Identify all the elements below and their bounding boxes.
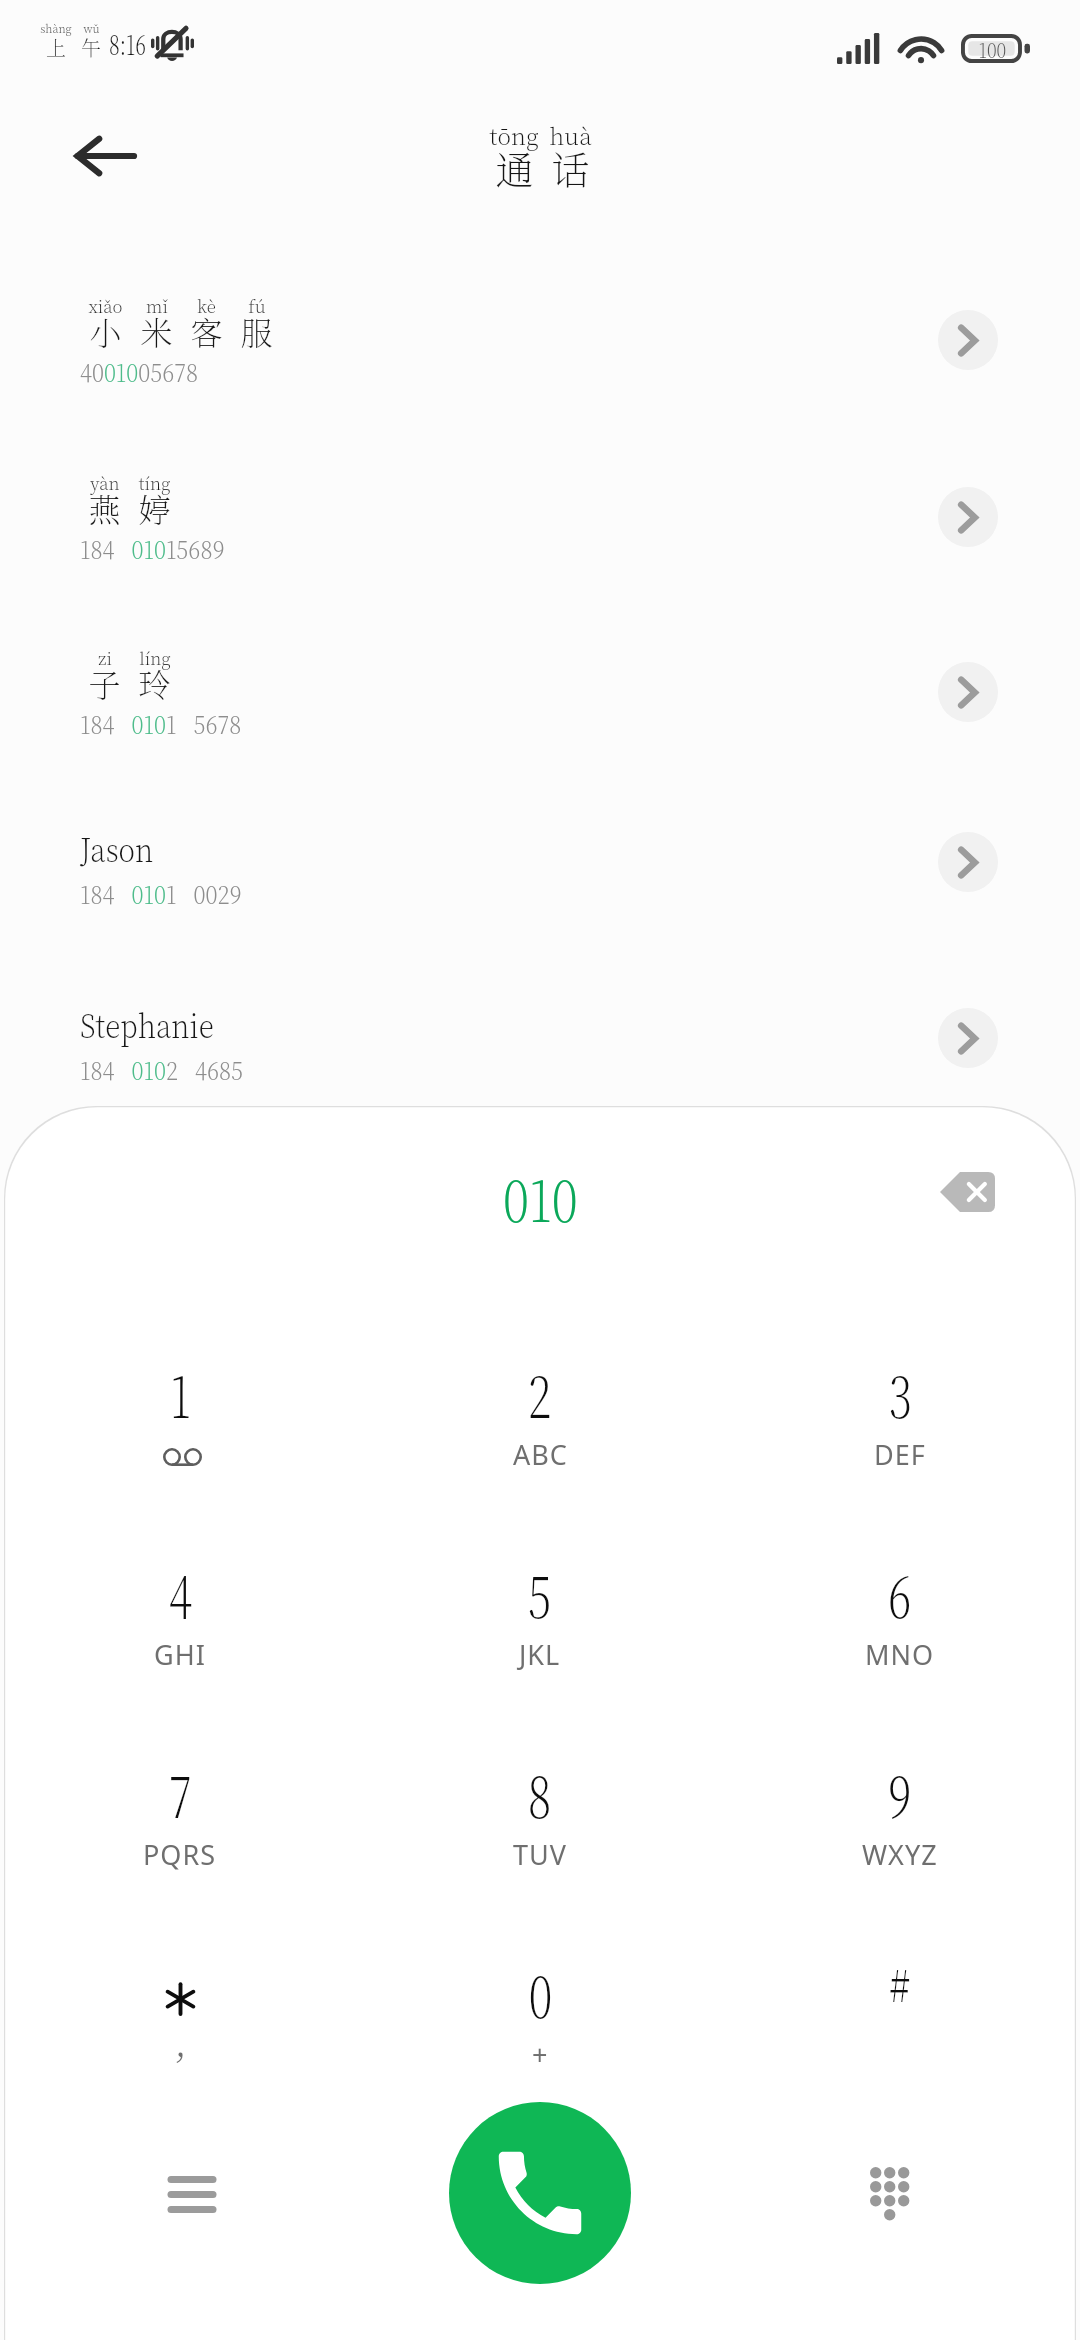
- button[interactable]: Open contact details: [938, 832, 998, 892]
- staticText: TUV: [513, 1836, 567, 1873]
- staticText: 4001005678: [80, 354, 199, 388]
- staticText: 玲: [138, 660, 171, 706]
- staticText: 184 0101 5678: [80, 706, 242, 740]
- staticText: 184 0102 4685: [80, 1052, 244, 1086]
- staticText: 上: [46, 33, 66, 62]
- staticText: mǐ: [146, 293, 168, 317]
- staticText: WXYZ: [862, 1836, 938, 1873]
- staticText: 184 01015689: [80, 531, 225, 565]
- button[interactable]: Stephanie: [0, 974, 1080, 1104]
- staticText: 0: [529, 1952, 552, 2034]
- button[interactable]: Open contact details: [938, 1008, 998, 1068]
- staticText: 燕: [88, 485, 121, 531]
- staticText: 8:16: [109, 24, 146, 63]
- staticText: 1: [170, 1352, 191, 1434]
- button[interactable]: Jason: [0, 798, 1080, 974]
- button[interactable]: Key #: [720, 1940, 1080, 2140]
- staticText: 5: [528, 1552, 552, 1634]
- button[interactable]: Key 5: [360, 1540, 720, 1740]
- button[interactable]: Key 9: [720, 1740, 1080, 1940]
- staticText: 2: [528, 1352, 552, 1434]
- button[interactable]: Key 6: [720, 1540, 1080, 1740]
- staticText: kè: [197, 293, 216, 317]
- staticText: 客: [190, 308, 223, 354]
- staticText: shàng: [40, 20, 72, 36]
- button[interactable]: Key 0: [360, 1940, 720, 2140]
- staticText: ABC: [513, 1436, 568, 1473]
- button[interactable]: Open contact details: [938, 662, 998, 722]
- staticText: 午: [81, 33, 101, 62]
- staticText: MNO: [865, 1636, 935, 1673]
- staticText: 子: [88, 660, 121, 706]
- staticText: 184 0101 0029: [80, 876, 242, 910]
- button[interactable]: Key 3: [720, 1340, 1080, 1540]
- staticText: 通: [495, 140, 534, 195]
- staticText: 服: [240, 308, 273, 354]
- button[interactable]: Open contact details: [938, 310, 998, 370]
- staticText: líng: [139, 645, 171, 669]
- staticText: fú: [248, 293, 266, 317]
- button[interactable]: Back: [58, 110, 150, 202]
- staticText: PQRS: [143, 1836, 217, 1873]
- staticText: 7: [169, 1752, 192, 1834]
- staticText: #: [890, 1949, 910, 2015]
- staticText: GHI: [154, 1636, 206, 1673]
- staticText: +: [532, 2036, 549, 2073]
- staticText: ,: [174, 2010, 187, 2067]
- button[interactable]: Key 7: [0, 1740, 360, 1940]
- staticText: 8: [528, 1752, 552, 1834]
- staticText: JKL: [519, 1636, 561, 1673]
- staticText: 010: [503, 1156, 578, 1238]
- staticText: wǔ: [83, 20, 100, 36]
- staticText: yàn: [90, 470, 120, 494]
- staticText: zi: [98, 645, 112, 669]
- button[interactable]: Key 1: [0, 1340, 360, 1540]
- staticText: 米: [140, 308, 173, 354]
- button[interactable]: Call log: [140, 2142, 244, 2246]
- staticText: Stephanie: [80, 1000, 214, 1047]
- staticText: 3: [889, 1352, 912, 1434]
- staticText: huà: [549, 119, 592, 152]
- staticText: 小: [89, 308, 122, 354]
- button[interactable]: Key 4: [0, 1540, 360, 1740]
- staticText: 婷: [138, 485, 171, 531]
- staticText: Jason: [80, 824, 154, 871]
- staticText: 100: [978, 34, 1007, 63]
- button[interactable]: Delete: [917, 1142, 1017, 1242]
- button[interactable]: Key *: [0, 1940, 360, 2140]
- staticText: 9: [888, 1752, 912, 1834]
- button[interactable]: Call: [449, 2102, 631, 2284]
- staticText: DEF: [874, 1436, 926, 1473]
- button[interactable]: Open contact details: [938, 487, 998, 547]
- button[interactable]: Dialpad: [838, 2142, 942, 2246]
- staticText: tíng: [138, 470, 171, 494]
- staticText: xiǎo: [88, 293, 123, 317]
- button[interactable]: xiǎo: [0, 276, 1080, 452]
- staticText: 4: [169, 1552, 192, 1634]
- button[interactable]: Key 2: [360, 1340, 720, 1540]
- staticText: tōng: [489, 119, 539, 152]
- button[interactable]: Key 8: [360, 1740, 720, 1940]
- staticText: 6: [888, 1552, 912, 1634]
- button[interactable]: zi: [0, 628, 1080, 804]
- staticText: 话: [551, 140, 590, 195]
- button[interactable]: yàn: [0, 453, 1080, 629]
